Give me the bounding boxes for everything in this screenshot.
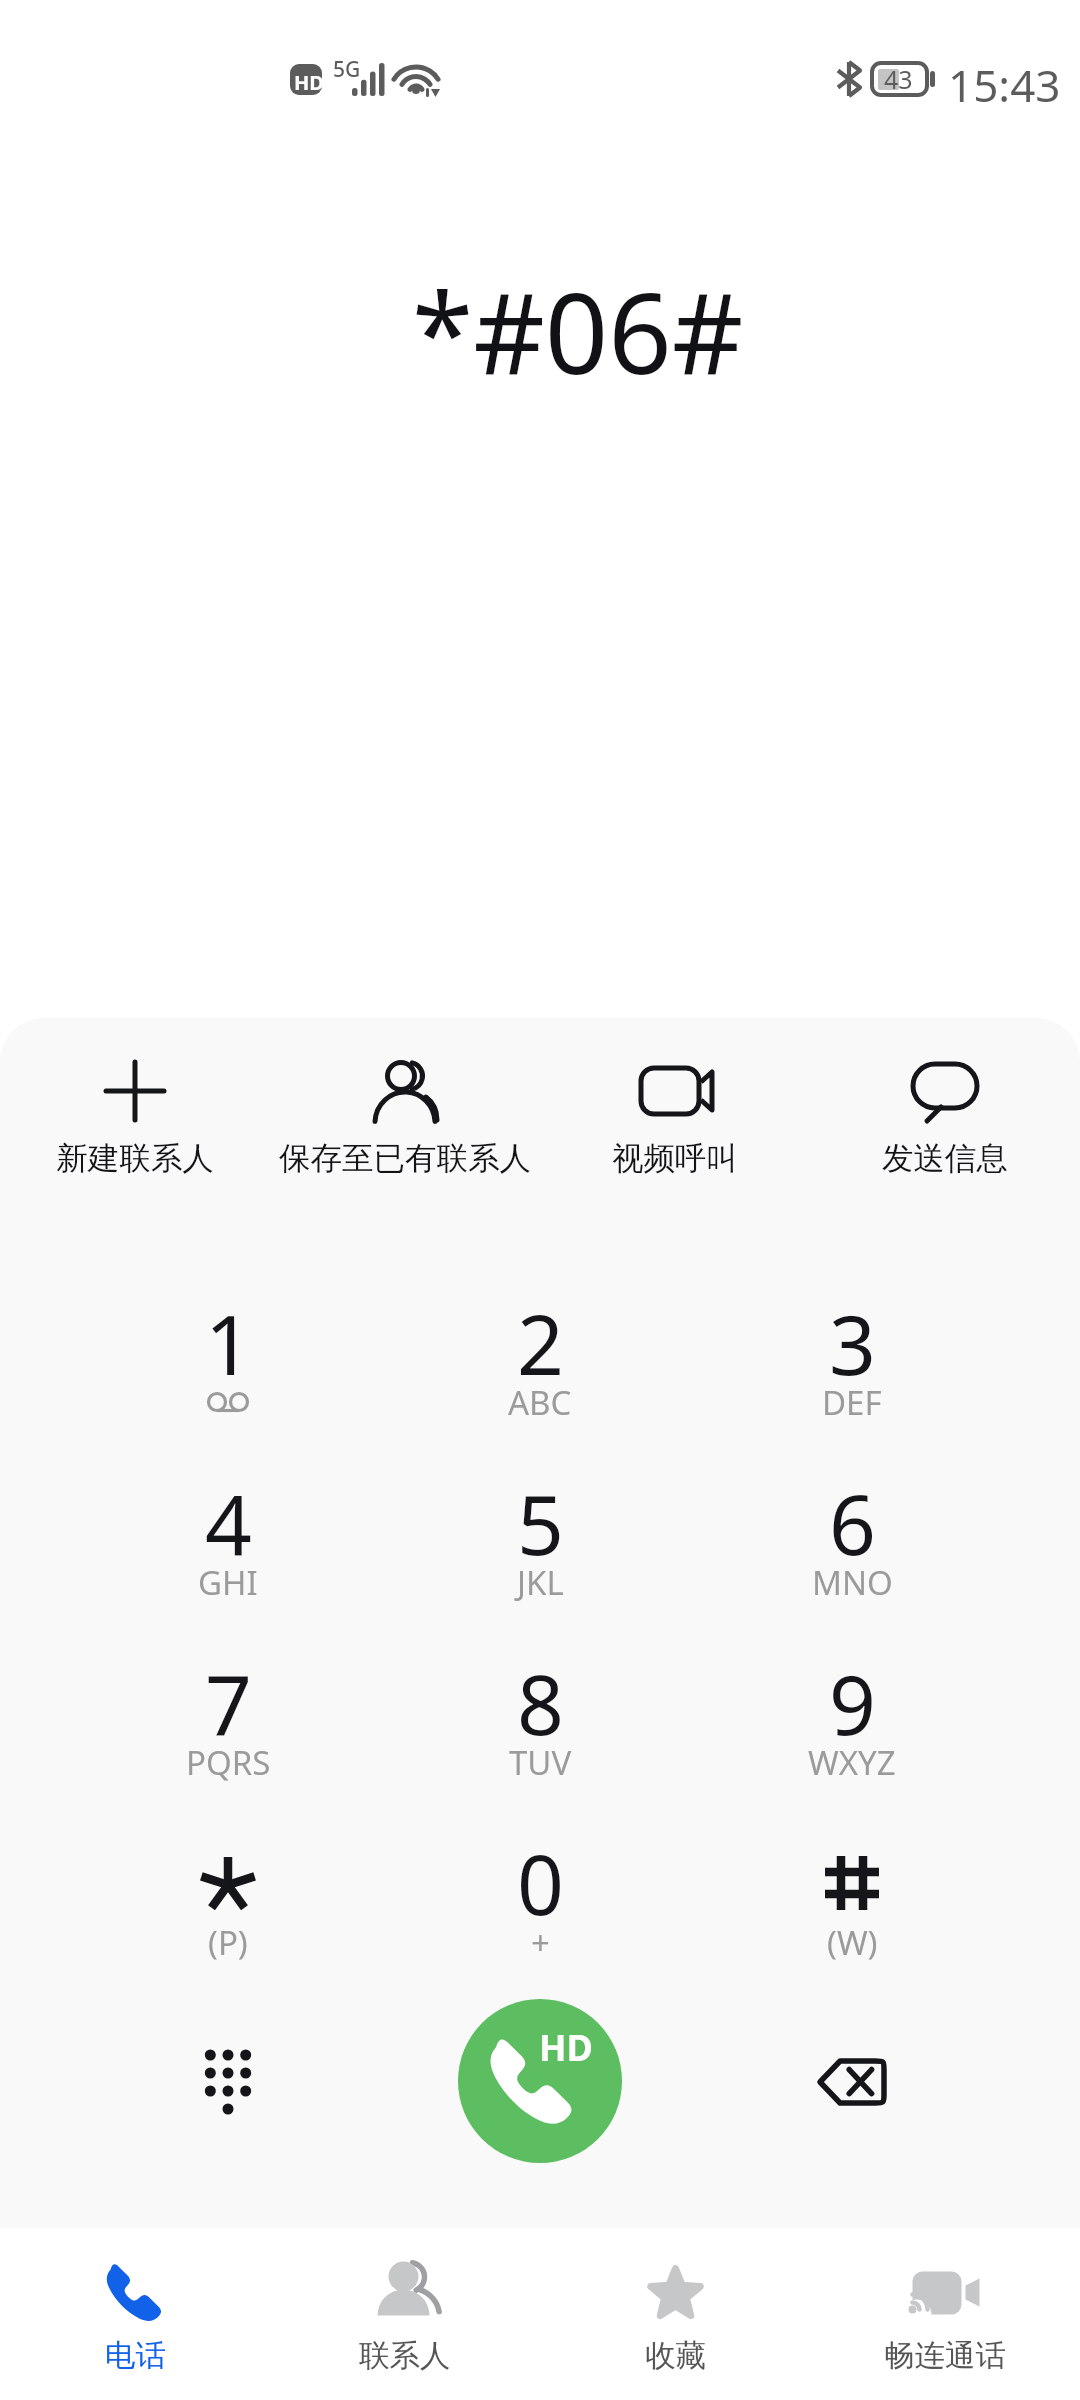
staticText: 新建联系人	[56, 1139, 214, 1179]
staticText: (P)	[208, 1920, 248, 1965]
button[interactable]: 联系人	[270, 2230, 540, 2400]
button[interactable]: Delete	[696, 1999, 1008, 2165]
staticText: 电话	[105, 2337, 166, 2375]
staticText: 5G	[333, 55, 361, 84]
staticText: +	[531, 1920, 550, 1965]
staticText: 6	[829, 1467, 876, 1579]
staticText: DEF	[822, 1380, 882, 1425]
button[interactable]: Dial #	[696, 1827, 1008, 2007]
staticText: 0	[517, 1827, 564, 1939]
button[interactable]: Dial 4	[72, 1467, 384, 1647]
staticText: 4	[205, 1467, 252, 1579]
staticText: 畅连通话	[884, 2337, 1006, 2375]
button[interactable]: Dial 5	[384, 1467, 696, 1647]
staticText: 保存至已有联系人	[279, 1139, 531, 1179]
button[interactable]: Dial 1	[72, 1287, 384, 1467]
button[interactable]: 电话	[0, 2230, 270, 2400]
button[interactable]: Send message	[810, 1034, 1080, 1214]
staticText: WXYZ	[808, 1740, 896, 1785]
button[interactable]: New contact	[0, 1034, 270, 1214]
staticText: GHI	[198, 1560, 258, 1605]
staticText: 9	[829, 1647, 876, 1759]
staticText: MNO	[812, 1560, 893, 1605]
staticText: JKL	[517, 1560, 564, 1605]
staticText: 7	[205, 1647, 252, 1759]
button[interactable]: Save to existing contact	[270, 1034, 540, 1214]
staticText: 收藏	[645, 2337, 706, 2375]
staticText: 联系人	[359, 2337, 451, 2375]
button[interactable]: Dial 2	[384, 1287, 696, 1467]
button[interactable]: Video call	[540, 1034, 810, 1214]
staticText: 发送信息	[882, 1139, 1008, 1179]
button[interactable]: Dial 8	[384, 1647, 696, 1827]
staticText: 视频呼叫	[612, 1139, 738, 1179]
staticText: 2	[517, 1287, 564, 1399]
button[interactable]: Dial *	[72, 1827, 384, 2007]
button[interactable]: Dial 3	[696, 1287, 1008, 1467]
staticText: 5	[517, 1467, 564, 1579]
staticText: HD	[294, 69, 324, 96]
staticText: 8	[517, 1647, 564, 1759]
staticText: 1	[205, 1287, 252, 1399]
staticText: PQRS	[186, 1740, 271, 1785]
button[interactable]: Call	[458, 1999, 622, 2163]
staticText: 15:43	[948, 55, 1061, 115]
button[interactable]: Show keypad	[72, 1999, 384, 2165]
staticText: TUV	[509, 1740, 572, 1785]
button[interactable]: 收藏	[540, 2230, 810, 2400]
staticText: 3	[829, 1287, 876, 1399]
button[interactable]: Dial 9	[696, 1647, 1008, 1827]
button[interactable]: Dial 0	[384, 1827, 696, 2007]
staticText: *#06#	[412, 255, 744, 406]
staticText: (W)	[827, 1920, 878, 1965]
button[interactable]: 畅连通话	[810, 2230, 1080, 2400]
staticText: 43	[884, 62, 913, 96]
staticText: HD	[539, 2023, 593, 2072]
button[interactable]: Dial 7	[72, 1647, 384, 1827]
button[interactable]: Dial 6	[696, 1467, 1008, 1647]
staticText: ABC	[508, 1380, 572, 1425]
